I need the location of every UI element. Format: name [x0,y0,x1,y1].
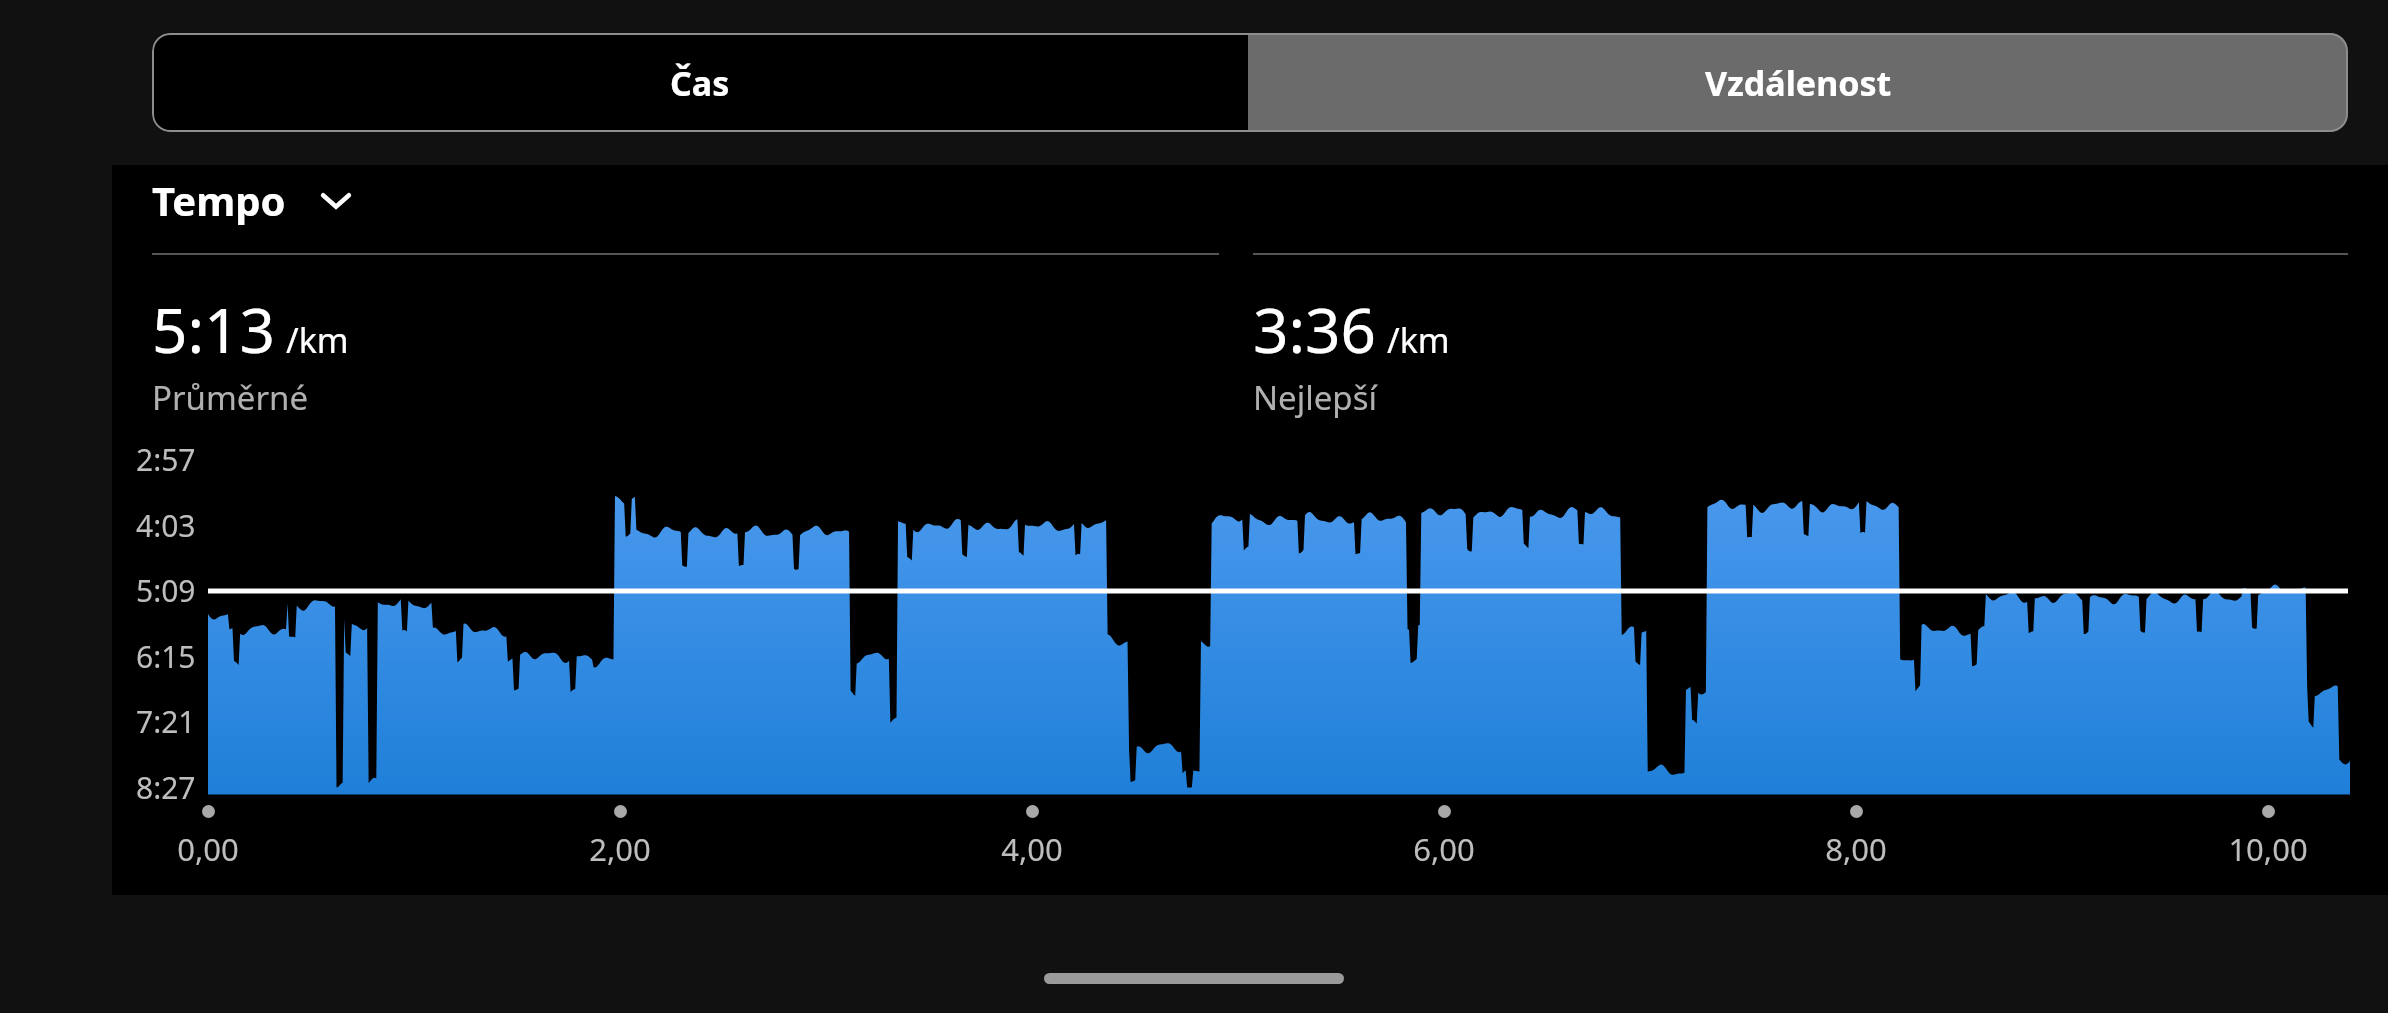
button[interactable]: Vzdálenost [1248,33,2348,132]
staticText: 2,00 [589,828,651,870]
staticText: 10,00 [2228,828,2308,870]
staticText: 4,00 [1001,828,1063,870]
staticText: 4:03 [136,505,196,546]
staticText: Nejlepší [1253,375,1377,420]
staticText: 7:21 [136,701,196,742]
staticText: 5:13 [152,287,276,371]
other: Expand metric [314,178,358,222]
staticText: 8:27 [136,767,196,808]
staticText: 0,00 [177,828,239,870]
staticText: 2:57 [136,439,196,480]
staticText: 3:36 [1253,287,1377,371]
staticText: 5:09 [136,570,196,611]
staticText: 8,00 [1825,828,1887,870]
staticText: /km [286,317,349,363]
staticText: Tempo [152,173,286,227]
staticText: Vzdálenost [1705,60,1892,106]
staticText: Čas [670,60,730,106]
staticText: /km [1387,317,1450,363]
staticText: Průměrné [152,375,309,420]
staticText: 6:15 [136,636,196,677]
button[interactable]: Tempo [152,173,330,227]
button[interactable]: Čas [152,33,1248,132]
staticText: 6,00 [1413,828,1475,870]
